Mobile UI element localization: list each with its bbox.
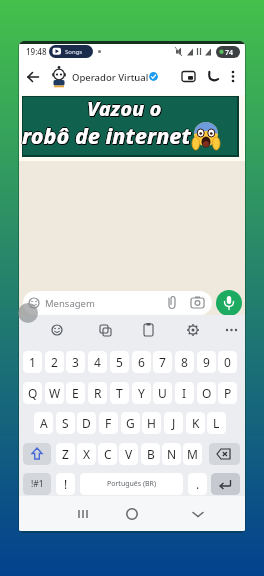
staticText: M xyxy=(187,446,198,462)
button[interactable]: !#1 xyxy=(23,473,51,495)
button[interactable] xyxy=(207,70,220,83)
button[interactable]: 8 xyxy=(175,351,194,373)
button[interactable]: Q xyxy=(23,382,42,404)
staticText: Songs xyxy=(65,48,83,56)
button[interactable]: B xyxy=(141,443,160,465)
staticText: D xyxy=(82,415,91,431)
staticText: 1 xyxy=(29,354,36,370)
button[interactable]: O xyxy=(197,382,216,404)
button[interactable] xyxy=(49,65,69,89)
staticText: ! xyxy=(64,476,68,492)
button[interactable] xyxy=(188,504,208,524)
button[interactable] xyxy=(122,504,142,524)
staticText: 8 xyxy=(181,354,188,370)
button[interactable]: Y xyxy=(132,382,151,404)
button[interactable]: G xyxy=(121,412,140,434)
button[interactable]: Z xyxy=(56,443,75,465)
staticText: robô de internet xyxy=(21,121,190,150)
staticText: 6 xyxy=(138,354,145,370)
staticText: robô de internet xyxy=(22,121,191,150)
staticText: T xyxy=(116,385,123,401)
button[interactable]: K xyxy=(186,412,205,434)
button[interactable]: Português (BR) xyxy=(80,473,183,495)
button[interactable]: D xyxy=(77,412,96,434)
staticText: S xyxy=(62,415,69,431)
button[interactable] xyxy=(211,473,240,495)
button[interactable]: P xyxy=(218,382,237,404)
button[interactable]: A xyxy=(34,412,53,434)
button[interactable] xyxy=(25,69,41,85)
staticText: robô de internet xyxy=(22,120,191,149)
staticText: K xyxy=(192,415,200,431)
staticText: Vazou o xyxy=(88,95,163,122)
button[interactable]: S xyxy=(56,412,75,434)
button[interactable]: . xyxy=(188,473,207,495)
staticText: robô de internet xyxy=(23,122,192,151)
button[interactable]: 7 xyxy=(153,351,172,373)
button[interactable] xyxy=(181,70,196,83)
button[interactable]: M xyxy=(183,443,202,465)
staticText: Q xyxy=(28,385,38,401)
staticText: Vazou o xyxy=(86,95,161,122)
button[interactable]: T xyxy=(110,382,129,404)
button[interactable]: C xyxy=(98,443,117,465)
staticText: L xyxy=(213,415,220,431)
staticText: 74 xyxy=(225,48,234,58)
button[interactable]: Mensagem xyxy=(23,291,212,315)
button[interactable]: 1 xyxy=(23,351,42,373)
button[interactable]: 9 xyxy=(197,351,216,373)
button[interactable]: 2 xyxy=(45,351,64,373)
staticText: 7 xyxy=(159,354,166,370)
button[interactable]: Songs xyxy=(49,45,93,58)
staticText: Operador Virtual xyxy=(72,71,149,84)
button[interactable]: V xyxy=(119,443,138,465)
button[interactable] xyxy=(23,443,51,465)
button[interactable]: 5 xyxy=(110,351,129,373)
button[interactable]: R xyxy=(88,382,107,404)
button[interactable]: 3 xyxy=(66,351,85,373)
staticText: Mensagem xyxy=(45,297,95,310)
staticText: A xyxy=(40,415,48,431)
button[interactable]: U xyxy=(153,382,172,404)
staticText: P xyxy=(224,385,232,401)
staticText: Vazou o xyxy=(87,94,162,121)
staticText: J xyxy=(172,415,176,431)
staticText: 9 xyxy=(203,354,210,370)
button[interactable] xyxy=(73,504,93,524)
staticText: . xyxy=(196,476,200,492)
button[interactable]: X xyxy=(77,443,96,465)
button[interactable]: 4 xyxy=(88,351,107,373)
staticText: U xyxy=(158,385,167,401)
button[interactable] xyxy=(209,443,240,465)
staticText: 2 xyxy=(51,354,58,370)
staticText: I xyxy=(182,385,187,401)
button[interactable] xyxy=(228,69,238,84)
staticText: Português (BR) xyxy=(107,479,157,489)
button[interactable]: W xyxy=(45,382,64,404)
staticText: 5 xyxy=(116,354,123,370)
staticText: B xyxy=(147,446,155,462)
button[interactable]: E xyxy=(66,382,85,404)
staticText: W xyxy=(49,385,61,401)
staticText: Z xyxy=(62,446,69,462)
button[interactable]: ! xyxy=(56,473,75,495)
staticText: Y xyxy=(138,385,145,401)
staticText: robô de internet xyxy=(23,121,192,150)
button[interactable]: 0 xyxy=(218,351,237,373)
staticText: C xyxy=(104,446,112,462)
button[interactable]: I xyxy=(175,382,194,404)
staticText: Vazou o xyxy=(87,96,162,123)
button[interactable]: N xyxy=(162,443,181,465)
staticText: 4 xyxy=(94,354,101,370)
button[interactable]: H xyxy=(142,412,161,434)
button[interactable] xyxy=(216,290,242,316)
staticText: R xyxy=(94,385,102,401)
staticText: E xyxy=(72,385,79,401)
staticText: Vazou o xyxy=(87,95,162,122)
staticText: 19:48 xyxy=(26,46,47,57)
button[interactable]: 6 xyxy=(132,351,151,373)
button[interactable]: J xyxy=(164,412,183,434)
button[interactable]: L xyxy=(207,412,226,434)
staticText: X xyxy=(83,446,91,462)
button[interactable]: F xyxy=(99,412,118,434)
